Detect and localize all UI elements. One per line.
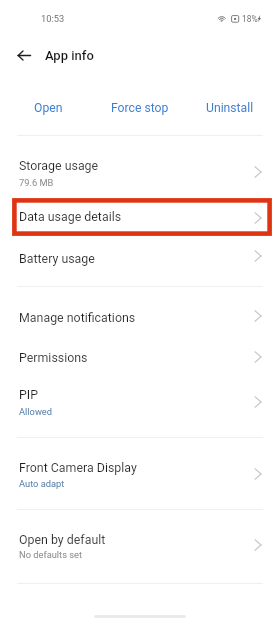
staticText: App info — [45, 48, 94, 63]
staticText: Force stop — [111, 101, 169, 115]
staticText: Allowed — [19, 406, 53, 417]
staticText: Auto adapt — [19, 478, 65, 489]
button[interactable]: Front Camera Display — [0, 450, 279, 498]
staticText: Battery usage — [19, 251, 95, 266]
staticText: Open — [34, 101, 63, 115]
button[interactable]: Manage notifications — [0, 297, 279, 336]
staticText: No defaults set — [19, 549, 83, 560]
staticText: PIP — [19, 387, 39, 402]
staticText: 79.6 MB — [19, 177, 54, 188]
button[interactable]: Permissions — [0, 337, 279, 376]
staticText: Permissions — [19, 350, 88, 365]
staticText: 10:53 — [41, 13, 65, 24]
button[interactable]: Open — [0, 94, 93, 124]
staticText: Data usage details — [19, 209, 122, 224]
button[interactable]: Force stop — [93, 94, 186, 124]
staticText: Front Camera Display — [19, 460, 137, 475]
button[interactable]: Uninstall — [186, 94, 279, 124]
button[interactable]: Open by default — [0, 522, 279, 570]
button[interactable]: PIP — [0, 378, 279, 426]
staticText: Storage usage — [19, 158, 99, 173]
staticText: 18% — [242, 14, 258, 24]
button[interactable]: Back — [10, 42, 37, 69]
button[interactable]: Battery usage — [0, 238, 279, 278]
button[interactable]: Data usage details — [0, 199, 279, 236]
button[interactable]: Storage usage — [0, 147, 279, 196]
staticText: Uninstall — [206, 101, 254, 115]
staticText: Open by default — [19, 532, 106, 547]
staticText: Manage notifications — [19, 310, 136, 325]
